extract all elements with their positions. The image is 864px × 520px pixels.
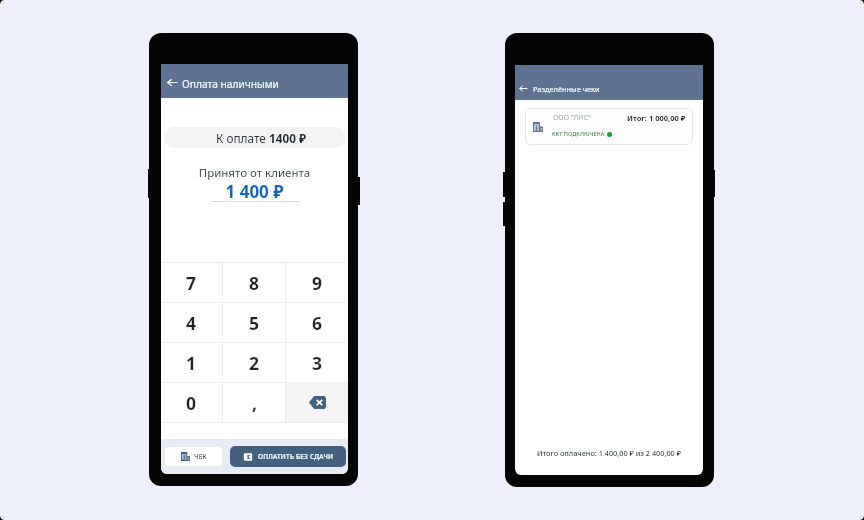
staticText: Оплата наличными <box>182 77 279 91</box>
staticText: ОПЛАТИТЬ БЕЗ СДАЧИ <box>258 452 334 461</box>
staticText: 1 <box>186 351 197 375</box>
staticText: 8 <box>249 271 260 295</box>
staticText: 1400 ₽ <box>269 130 307 146</box>
button[interactable]: 5 <box>223 303 285 342</box>
button[interactable]: 0 <box>161 383 222 422</box>
button[interactable]: Назад <box>162 72 182 92</box>
button[interactable]: 7 <box>161 263 222 302</box>
button[interactable]: ОПЛАТИТЬ БЕЗ СДАЧИ <box>230 446 346 467</box>
staticText: ЧЕК <box>194 452 207 461</box>
staticText: , <box>252 391 257 415</box>
staticText: Итого оплачено: 1 400,00 ₽ из 2 400,00 ₽ <box>515 448 703 458</box>
button[interactable]: 6 <box>286 303 348 342</box>
staticText: ККТ ПОДКЛЮЧЕНА <box>552 130 605 138</box>
button[interactable]: ЧЕК <box>164 446 223 467</box>
staticText: 7 <box>186 271 197 295</box>
button[interactable]: ООО "ЛИС" <box>525 108 693 145</box>
button[interactable]: 2 <box>223 343 285 382</box>
button[interactable]: , <box>223 383 285 422</box>
staticText: 1 400 ₽ <box>161 180 348 203</box>
staticText: 0 <box>186 391 197 415</box>
button[interactable]: 4 <box>161 303 222 342</box>
button[interactable]: 8 <box>223 263 285 302</box>
button[interactable]: 9 <box>286 263 348 302</box>
button[interactable]: 1 <box>161 343 222 382</box>
staticText: 6 <box>312 311 323 335</box>
staticText: 3 <box>312 351 323 375</box>
button[interactable]: Стереть <box>286 383 348 422</box>
staticText: Итог: 1 000,00 ₽ <box>627 113 686 123</box>
staticText: Разделённые чеки <box>533 84 600 94</box>
staticText: 5 <box>249 311 260 335</box>
staticText: К оплате <box>216 130 269 146</box>
staticText: 4 <box>186 311 197 335</box>
button[interactable]: К оплате <box>164 127 345 148</box>
button[interactable]: 3 <box>286 343 348 382</box>
staticText: ООО "ЛИС" <box>553 113 591 123</box>
staticText: 9 <box>312 271 323 295</box>
staticText: 2 <box>249 351 260 375</box>
staticText: Принято от клиента <box>161 165 348 181</box>
button[interactable]: Назад <box>515 79 533 98</box>
